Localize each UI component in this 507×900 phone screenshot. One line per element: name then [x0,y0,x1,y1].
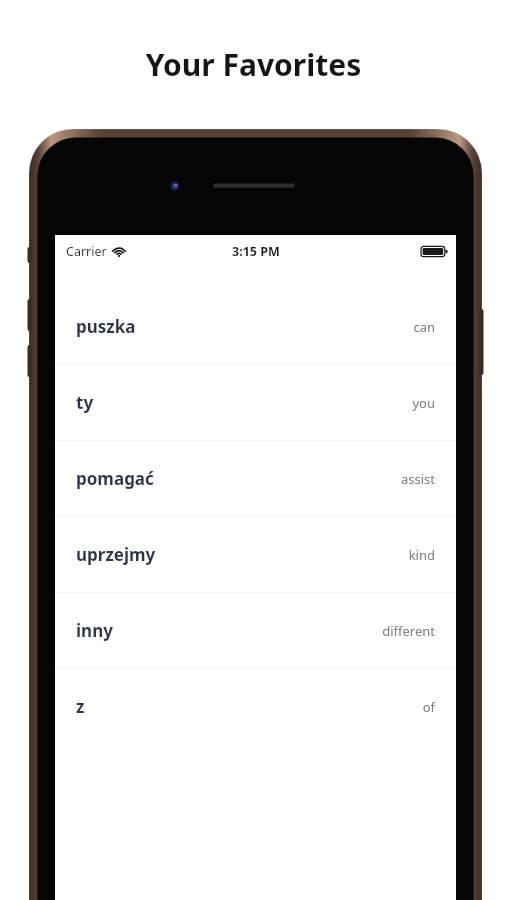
other: Battery full [421,245,448,258]
button[interactable]: ty [55,365,456,440]
other: Wi-Fi signal [112,246,126,257]
button[interactable]: uprzejmy [55,517,456,592]
staticText: z [76,695,85,718]
staticText: kind [408,546,435,564]
button[interactable]: puszka [55,289,456,364]
staticText: uprzejmy [76,543,156,566]
staticText: inny [76,619,113,642]
staticText: can [413,318,435,336]
staticText: 3:15 PM [232,243,280,260]
staticText: Carrier [66,243,107,260]
staticText: ty [76,391,94,414]
staticText: different [382,622,435,640]
staticText: you [412,394,435,412]
staticText: assist [400,470,435,488]
button[interactable]: z [55,669,456,744]
button[interactable]: pomagać [55,441,456,516]
staticText: puszka [76,315,136,338]
staticText: Your Favorites [0,44,507,85]
staticText: pomagać [76,467,154,490]
staticText: of [422,698,435,716]
button[interactable]: inny [55,593,456,668]
